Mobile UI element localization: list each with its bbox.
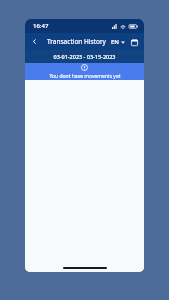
button[interactable]: 03-01-2023 - 03-15-2023	[25, 50, 144, 63]
staticText: EN	[111, 38, 119, 46]
button[interactable]: Back	[28, 35, 41, 48]
staticText: You dont have movements yet	[49, 73, 121, 80]
staticText: 03-01-2023 - 03-15-2023	[53, 53, 116, 60]
button[interactable]: EN	[109, 36, 127, 48]
staticText: Transaction History	[47, 37, 106, 46]
button[interactable]: Select date range	[128, 36, 140, 48]
staticText: 16:47	[33, 22, 49, 30]
